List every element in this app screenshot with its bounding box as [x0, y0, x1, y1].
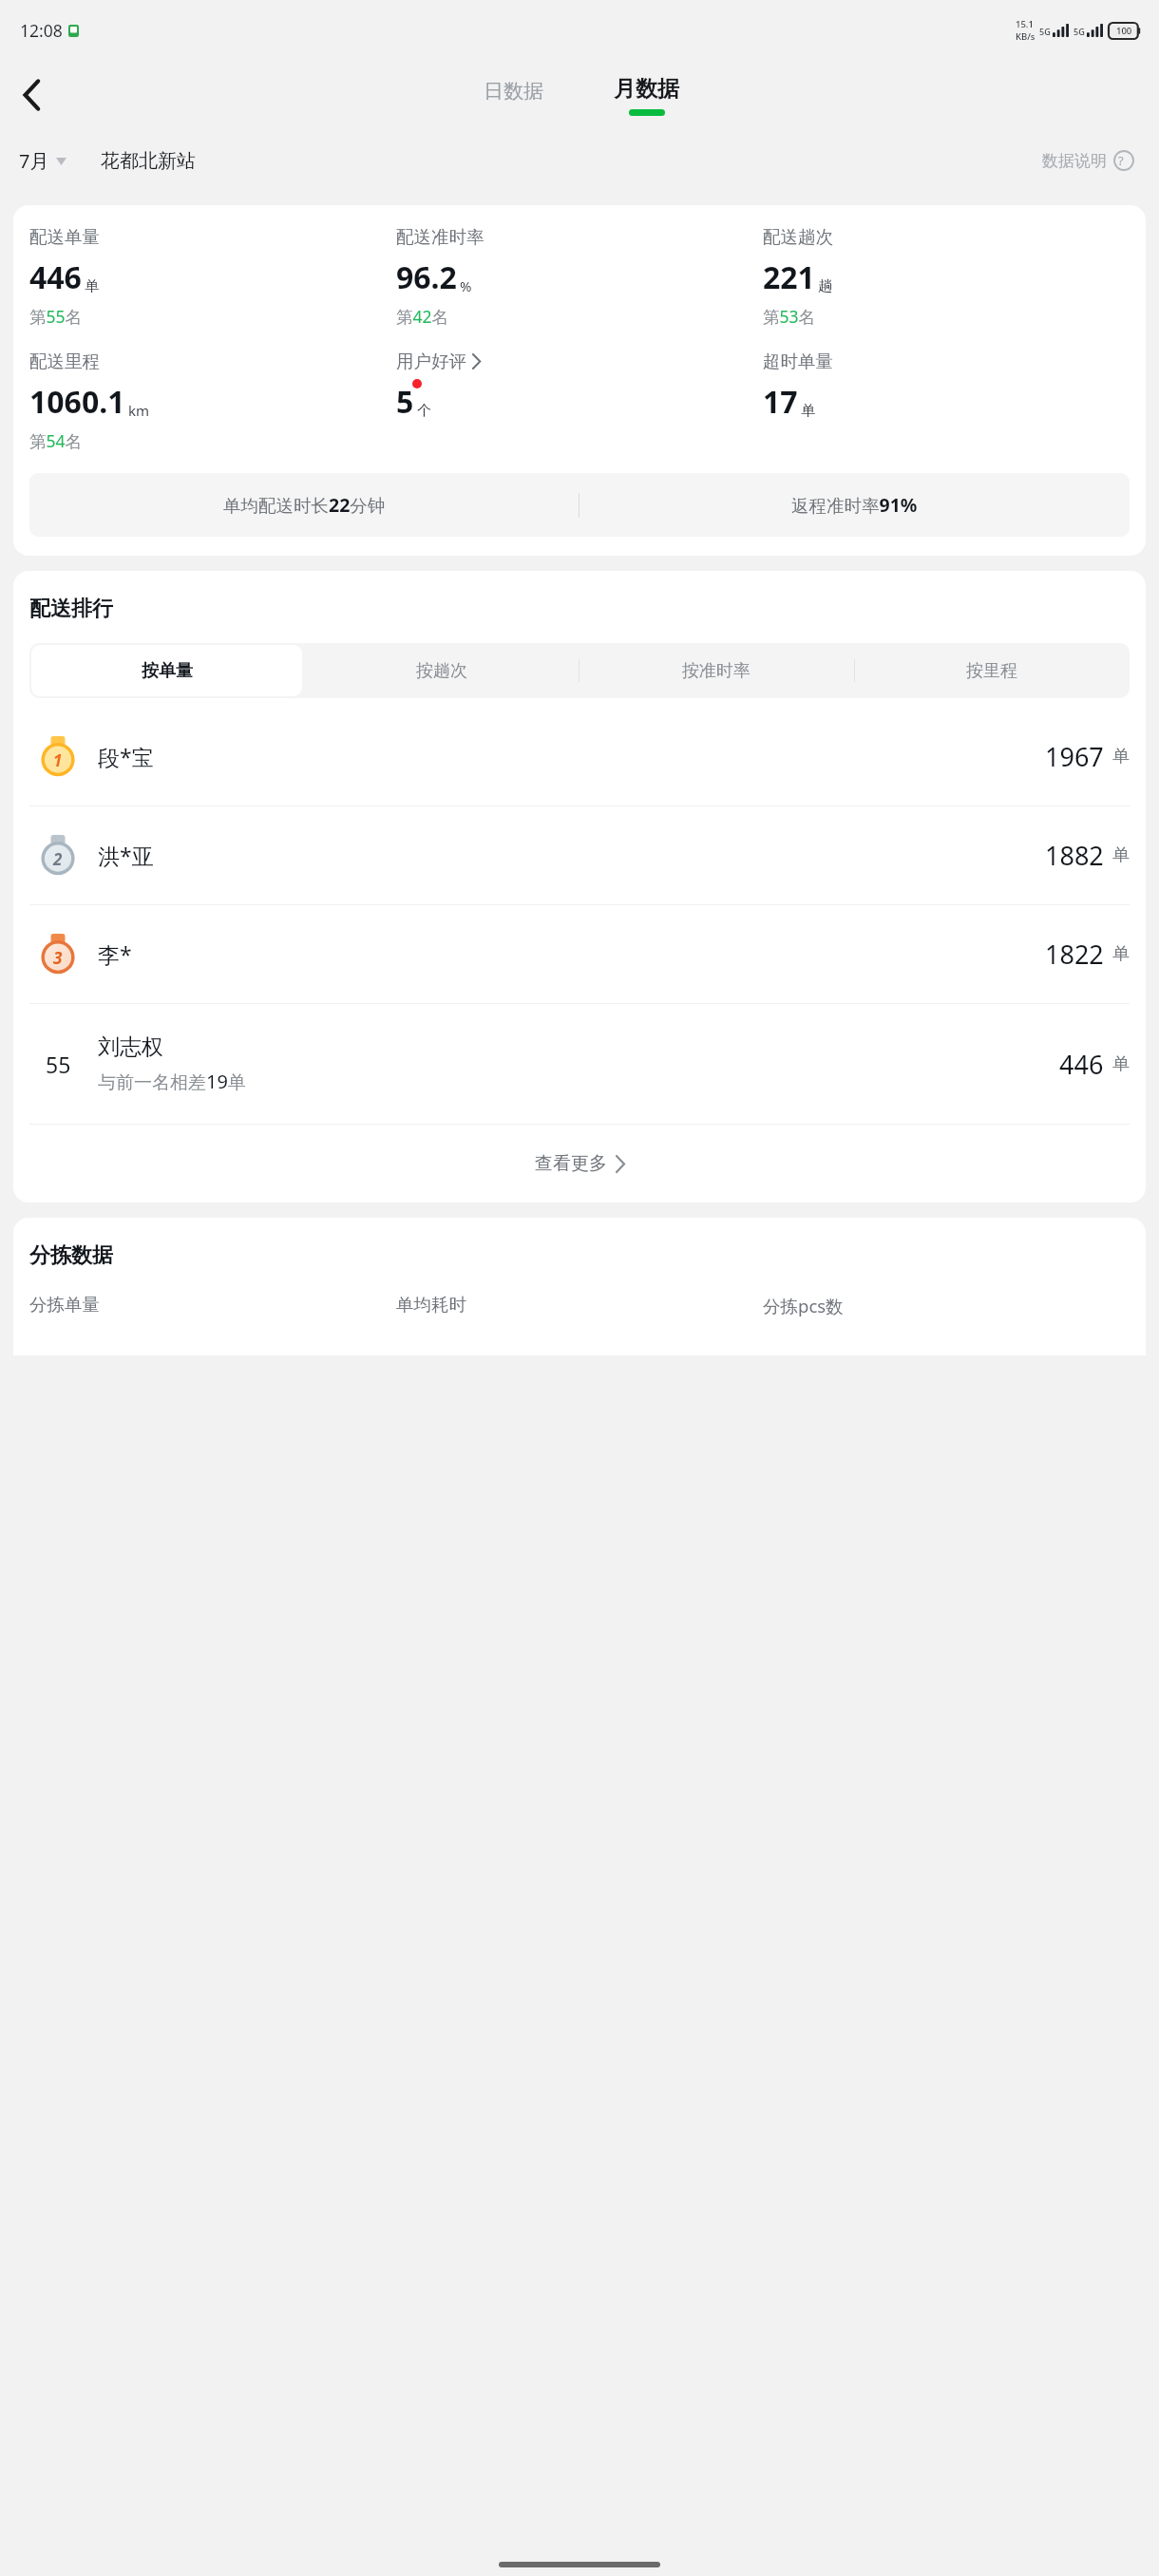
staticText: 15.1	[1016, 18, 1034, 30]
button[interactable]: 3	[29, 905, 1130, 1004]
staticText: 查看更多	[535, 1152, 607, 1175]
staticText: 超时单量	[763, 350, 833, 372]
staticText: 配送准时率	[396, 226, 484, 248]
button[interactable]: 7月	[19, 148, 70, 174]
staticText: 第42名	[396, 305, 449, 328]
staticText: 数据说明	[1042, 151, 1107, 171]
staticText: 配送排行	[29, 596, 113, 622]
staticText: 刘志权	[98, 1033, 163, 1061]
button[interactable]: 日数据	[466, 75, 560, 107]
staticText: 5	[396, 381, 414, 423]
staticText: 7月	[19, 148, 49, 174]
staticText: %	[460, 276, 472, 295]
staticText: KB/s	[1016, 30, 1035, 43]
staticText: 单	[801, 402, 815, 420]
staticText: 1822	[1045, 937, 1104, 972]
staticText: 分拣数据	[29, 1242, 113, 1269]
staticText: 单均配送时长22分钟	[223, 492, 386, 518]
staticText: 2	[53, 848, 63, 870]
staticText: km	[128, 401, 150, 420]
staticText: 段*宝	[98, 742, 154, 771]
staticText: 李*	[98, 939, 132, 969]
staticText: 用户好评	[396, 350, 466, 372]
staticText: 1882	[1045, 838, 1104, 873]
button[interactable]: 按趟次	[304, 643, 579, 698]
button[interactable]: 55	[29, 1004, 1130, 1124]
staticText: 1	[53, 749, 63, 771]
staticText: 花都北新站	[101, 149, 196, 173]
staticText: 单	[1112, 943, 1130, 965]
staticText: 分拣pcs数	[763, 1294, 844, 1317]
staticText: 第53名	[763, 305, 816, 328]
staticText: 返程准时率91%	[791, 492, 918, 518]
button[interactable]: 按单量	[29, 643, 304, 698]
staticText: 55	[46, 1050, 71, 1079]
staticText: 第54名	[29, 429, 83, 452]
staticText: 96.2	[396, 256, 457, 298]
staticText: 单	[85, 277, 99, 295]
button[interactable]: 按准时率	[579, 643, 854, 698]
staticText: 配送单量	[29, 226, 100, 248]
staticText: 按趟次	[416, 660, 467, 682]
staticText: 配送里程	[29, 350, 100, 372]
staticText: 个	[417, 402, 431, 420]
staticText: 446	[29, 256, 82, 298]
staticText: 100	[1116, 25, 1132, 37]
staticText: ?	[1118, 152, 1124, 169]
staticText: 12:08	[20, 19, 63, 42]
staticText: 与前一名相差19单	[98, 1069, 246, 1094]
staticText: 单	[1112, 844, 1130, 866]
staticText: 1967	[1045, 739, 1104, 774]
staticText: 221	[763, 256, 815, 298]
staticText: 1060.1	[29, 381, 125, 423]
button[interactable]: 1	[29, 708, 1130, 806]
button[interactable]: 查看更多	[29, 1125, 1130, 1203]
staticText: 单	[1112, 746, 1130, 767]
staticText: 洪*亚	[98, 841, 154, 870]
staticText: 趟	[818, 277, 832, 295]
button[interactable]: 月数据	[600, 75, 693, 116]
staticText: 5G	[1073, 26, 1085, 37]
staticText: 单	[1112, 1053, 1130, 1075]
button[interactable]: Back	[6, 68, 59, 122]
staticText: 日数据	[484, 79, 543, 104]
staticText: 17	[763, 381, 798, 423]
staticText: 第55名	[29, 305, 83, 328]
staticText: 月数据	[614, 75, 679, 103]
staticText: 3	[53, 947, 63, 969]
staticText: 5G	[1039, 26, 1051, 37]
button[interactable]: 2	[29, 806, 1130, 905]
staticText: 按里程	[966, 660, 1017, 682]
staticText: 配送趟次	[763, 226, 833, 248]
staticText: 按准时率	[682, 660, 750, 682]
staticText: 单均耗时	[396, 1294, 466, 1316]
staticText: 446	[1059, 1047, 1104, 1082]
staticText: 按单量	[142, 660, 193, 682]
button[interactable]: 按里程	[854, 643, 1130, 698]
button[interactable]: 数据说明	[1042, 150, 1140, 171]
staticText: 分拣单量	[29, 1294, 100, 1316]
